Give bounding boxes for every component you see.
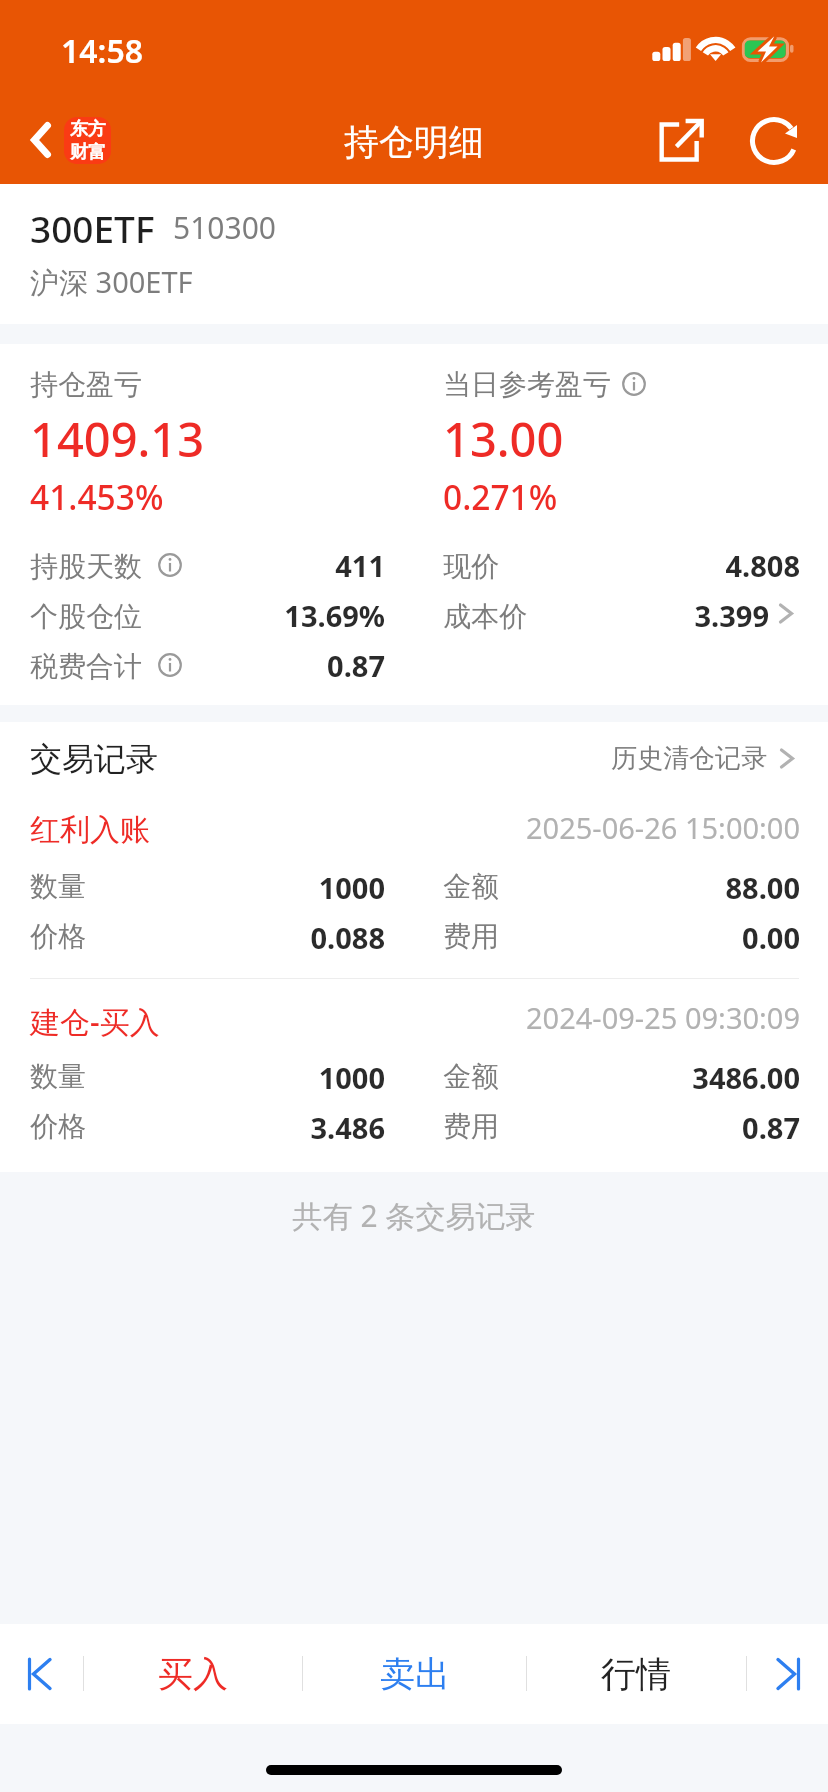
button[interactable]	[433, 589, 803, 637]
staticText: 2025-06-26 15:00:00	[380, 808, 800, 847]
staticText: 0.088	[0, 918, 385, 957]
staticText: 卖出	[380, 1652, 450, 1696]
staticText: 建仓-买入	[30, 1001, 160, 1042]
staticText: 费用	[443, 919, 499, 954]
staticText: 3.486	[0, 1108, 385, 1147]
staticText: 税费合计	[30, 649, 142, 684]
staticText: 13.00	[443, 407, 564, 471]
staticText: 当日参考盈亏	[443, 367, 611, 402]
staticText: 历史清仓记录	[611, 742, 767, 775]
staticText: 金额	[443, 869, 499, 904]
staticText: 红利入账	[30, 811, 150, 849]
staticText: 0.00	[380, 918, 800, 957]
staticText: 东方	[70, 118, 106, 141]
staticText: 2024-09-25 09:30:09	[380, 998, 800, 1037]
button[interactable]: Last page	[746, 1624, 828, 1724]
other: Back	[31, 122, 51, 158]
staticText: 411	[0, 546, 385, 585]
staticText: 财富	[70, 141, 106, 164]
staticText: 0.87	[380, 1108, 800, 1147]
button[interactable]: 行情	[526, 1624, 746, 1724]
staticText: 行情	[601, 1652, 671, 1696]
staticText: 1409.13	[30, 407, 205, 471]
staticText: 买入	[158, 1652, 228, 1696]
button[interactable]: First page	[0, 1624, 83, 1724]
staticText: 交易记录	[30, 739, 158, 779]
staticText: 个股仓位	[30, 599, 142, 634]
button[interactable]: 买入	[83, 1624, 302, 1724]
staticText: 价格	[30, 919, 86, 954]
staticText: 4.808	[380, 546, 800, 585]
staticText: 金额	[443, 1059, 499, 1094]
staticText: 价格	[30, 1109, 86, 1144]
staticText: 300ETF	[30, 203, 155, 253]
staticText: 数量	[30, 869, 86, 904]
staticText: 14:58	[61, 29, 144, 73]
button[interactable]: Share	[640, 101, 722, 183]
staticText: 0.87	[0, 646, 385, 685]
staticText: 3.399	[349, 596, 769, 635]
staticText: 现价	[443, 549, 499, 584]
button[interactable]: 历史清仓记录	[611, 734, 795, 782]
staticText: 持仓盈亏	[30, 367, 142, 402]
staticText: 13.69%	[0, 596, 385, 635]
staticText: 持仓明细	[344, 120, 484, 164]
staticText: 沪深 300ETF	[30, 262, 193, 302]
staticText: 数量	[30, 1059, 86, 1094]
button[interactable]: 卖出	[303, 1624, 526, 1724]
staticText: 3486.00	[380, 1058, 800, 1097]
button[interactable]: Back	[12, 99, 111, 181]
button[interactable]: Refresh	[736, 101, 818, 183]
staticText: 1000	[0, 1058, 385, 1097]
staticText: 0.271%	[443, 474, 558, 520]
staticText: 持股天数	[30, 549, 142, 584]
staticText: 510300	[173, 207, 276, 248]
staticText: 88.00	[380, 868, 800, 907]
staticText: 费用	[443, 1109, 499, 1144]
staticText: 共有 2 条交易记录	[0, 1195, 828, 1236]
staticText: 成本价	[443, 599, 527, 634]
staticText: 41.453%	[30, 474, 164, 520]
staticText: 1000	[0, 868, 385, 907]
